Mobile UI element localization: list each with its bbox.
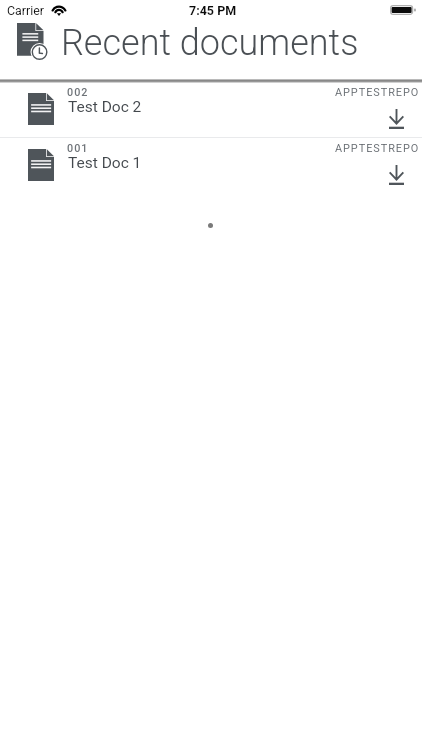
staticText: Carrier: [7, 3, 44, 18]
staticText: Recent documents: [61, 22, 359, 64]
staticText: APPTESTREPO: [335, 86, 420, 99]
button[interactable]: 002: [0, 82, 422, 138]
staticText: 002: [67, 86, 89, 99]
staticText: Test Doc 2: [68, 98, 142, 116]
staticText: 001: [67, 142, 89, 155]
staticText: 7:45 PM: [189, 3, 237, 18]
button[interactable]: Download: [386, 109, 406, 129]
staticText: Test Doc 1: [68, 154, 142, 172]
button[interactable]: 001: [0, 138, 422, 194]
button[interactable]: Download: [386, 165, 406, 185]
staticText: APPTESTREPO: [335, 142, 420, 155]
